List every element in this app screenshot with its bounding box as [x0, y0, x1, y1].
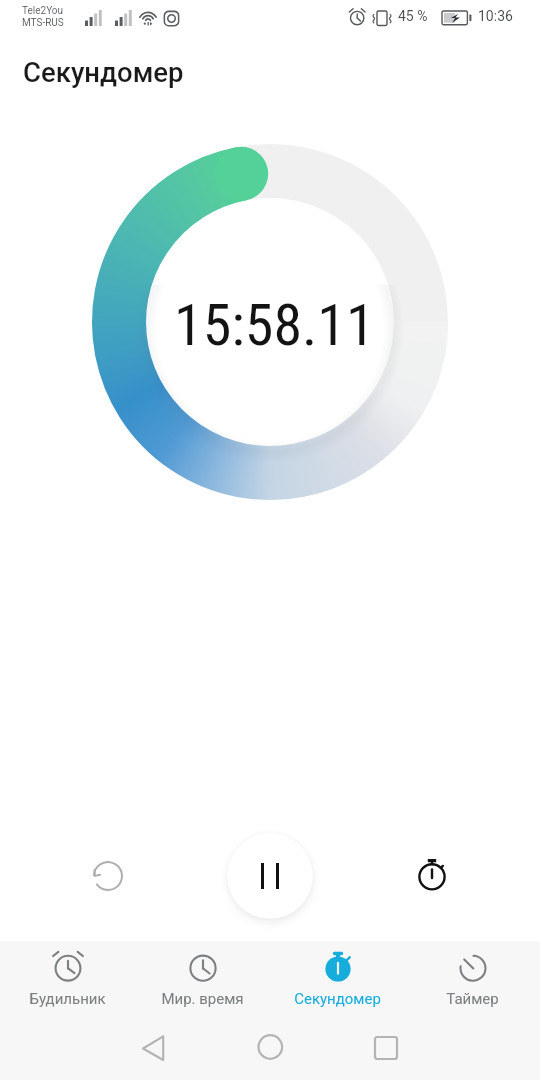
button[interactable]: Back — [128, 1022, 180, 1074]
staticText: MTS-RUS — [22, 17, 64, 29]
button[interactable]: Будильник — [0, 941, 135, 1016]
staticText: Tele2You — [22, 5, 64, 17]
staticText: Таймер — [446, 990, 499, 1008]
staticText: 10:36 — [478, 8, 513, 24]
staticText: Секундомер — [294, 990, 381, 1008]
staticText: Будильник — [29, 990, 106, 1008]
button[interactable]: Lap — [400, 844, 464, 908]
button[interactable]: Секундомер — [270, 941, 405, 1016]
button[interactable]: Reset — [76, 844, 140, 908]
button[interactable]: Мир. время — [135, 941, 270, 1016]
button[interactable]: Таймер — [405, 941, 540, 1016]
staticText: 45 % — [398, 8, 428, 24]
button[interactable]: Pause — [227, 833, 313, 919]
staticText: 15:58.11 — [174, 291, 375, 359]
staticText: Секундомер — [23, 56, 184, 88]
button[interactable]: Home — [244, 1021, 296, 1073]
button[interactable]: Recents — [360, 1022, 412, 1074]
staticText: Мир. время — [161, 990, 244, 1008]
